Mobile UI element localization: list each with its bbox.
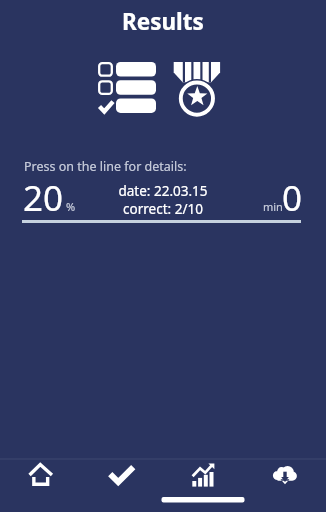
staticText: 20 xyxy=(23,174,64,221)
staticText: 0 xyxy=(282,174,303,221)
button[interactable]: Download xyxy=(245,458,326,512)
staticText: Results xyxy=(122,6,204,34)
staticText: min xyxy=(263,199,283,214)
button[interactable]: Check xyxy=(82,458,164,512)
button[interactable]: Statistics xyxy=(163,458,245,512)
staticText: date: 22.03.15 correct: 2/10 xyxy=(118,182,208,218)
staticText: Press on the line for details: xyxy=(24,158,187,175)
button[interactable]: Home xyxy=(0,458,82,512)
button[interactable]: 20 xyxy=(0,178,326,225)
staticText: % xyxy=(66,199,76,214)
